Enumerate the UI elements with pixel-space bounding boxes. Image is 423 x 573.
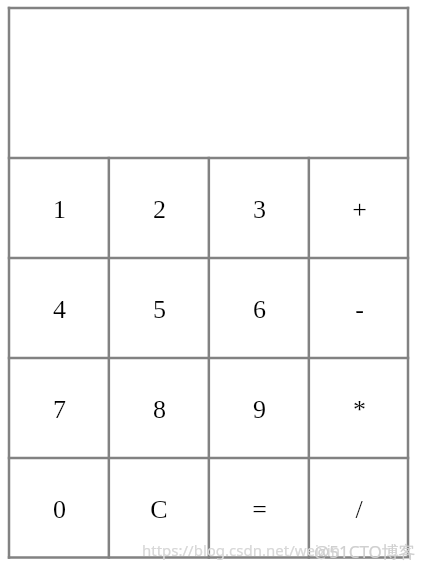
staticText: = — [252, 495, 267, 524]
staticText: https://blog.csdn.net/weixin — [142, 540, 340, 560]
staticText: 2 — [153, 195, 166, 224]
button[interactable]: 3 — [209, 158, 309, 258]
button[interactable]: * — [309, 358, 409, 458]
staticText: * — [353, 395, 366, 424]
staticText: + — [352, 195, 367, 224]
button[interactable]: / — [309, 458, 409, 558]
button[interactable]: 5 — [109, 258, 209, 358]
button[interactable]: 4 — [9, 258, 109, 358]
button[interactable]: - — [309, 258, 409, 358]
button[interactable]: C — [109, 458, 209, 558]
staticText: 9 — [253, 395, 266, 424]
button[interactable]: 0 — [9, 458, 109, 558]
button[interactable]: 1 — [9, 158, 109, 258]
staticText: 4 — [53, 295, 66, 324]
staticText: 8 — [153, 395, 166, 424]
staticText: / — [355, 495, 363, 524]
button[interactable]: Result display — [9, 8, 409, 158]
staticText: - — [355, 295, 364, 324]
button[interactable]: 2 — [109, 158, 209, 258]
button[interactable]: 9 — [209, 358, 309, 458]
button[interactable]: + — [309, 158, 409, 258]
button[interactable]: 6 — [209, 258, 309, 358]
staticText: 0 — [53, 495, 66, 524]
staticText: 5 — [153, 295, 166, 324]
staticText: C — [150, 495, 168, 524]
staticText: 6 — [253, 295, 266, 324]
staticText: 7 — [53, 395, 66, 424]
button[interactable]: 8 — [109, 358, 209, 458]
button[interactable]: = — [209, 458, 309, 558]
staticText: 3 — [253, 195, 266, 224]
button[interactable]: 7 — [9, 358, 109, 458]
staticText: @51CTO博客 — [314, 540, 416, 563]
staticText: 1 — [53, 195, 66, 224]
